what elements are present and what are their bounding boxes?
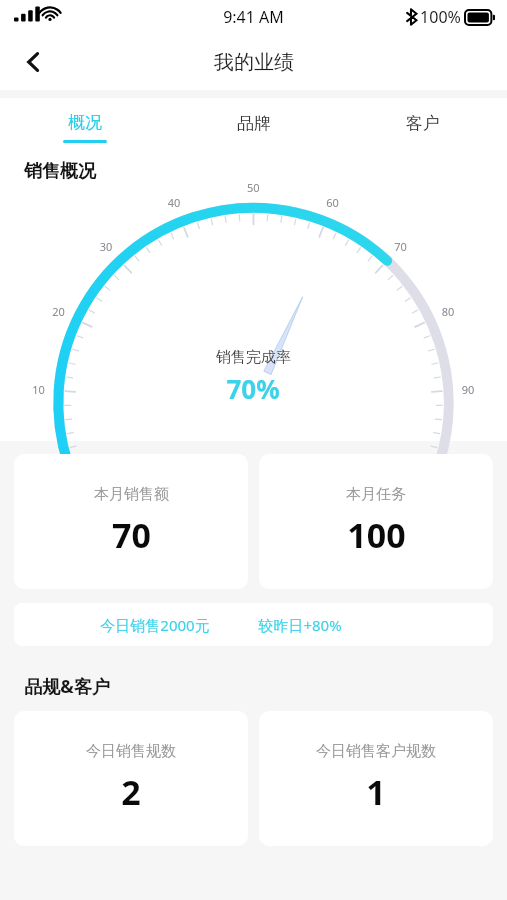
staticText: 9:41 AM <box>223 6 284 28</box>
button[interactable]: 概况 <box>0 106 169 143</box>
button[interactable]: 今日销售规数 <box>14 711 248 846</box>
staticText: 品规&客户 <box>24 674 110 699</box>
staticText: 客户 <box>406 113 440 134</box>
button[interactable]: 客户 <box>338 107 507 141</box>
staticText: 品牌 <box>237 113 271 134</box>
staticText: 1 <box>366 769 386 815</box>
staticText: 今日销售规数 <box>86 742 176 761</box>
staticText: 2 <box>121 769 141 815</box>
button[interactable]: 本月任务 <box>259 454 493 589</box>
button[interactable]: 品牌 <box>169 107 338 141</box>
staticText: 今日销售2000元 <box>100 615 210 635</box>
staticText: 销售概况 <box>24 160 96 183</box>
staticText: 本月销售额 <box>94 485 169 504</box>
button[interactable]: 今日销售客户规数 <box>259 711 493 846</box>
staticText: 100 <box>347 512 406 558</box>
staticText: 概况 <box>68 112 102 133</box>
button[interactable]: 今日销售2000元 <box>14 603 493 646</box>
staticText: 今日销售客户规数 <box>316 742 436 761</box>
staticText: 70 <box>112 512 151 558</box>
button[interactable]: Back <box>12 40 56 84</box>
staticText: 较昨日+80% <box>258 615 342 635</box>
staticText: 100% <box>420 6 461 28</box>
button[interactable]: 本月销售额 <box>14 454 248 589</box>
staticText: 本月任务 <box>346 485 406 504</box>
staticText: 我的业绩 <box>214 50 294 75</box>
